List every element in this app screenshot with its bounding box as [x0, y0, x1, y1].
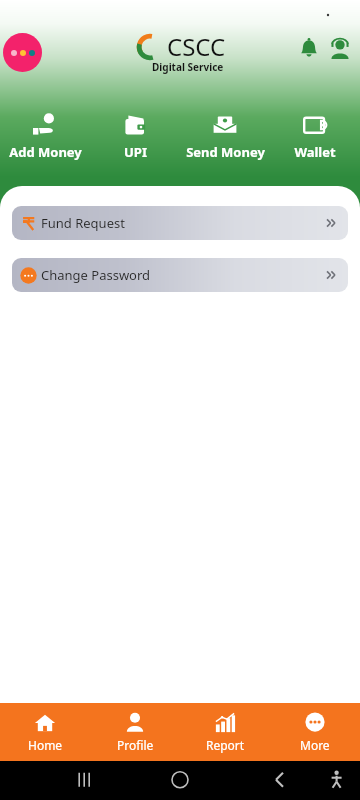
- staticText: Report: [206, 737, 245, 753]
- button[interactable]: UPI: [90, 110, 180, 161]
- staticText: Fund Request: [41, 214, 125, 232]
- staticText: Digital Service: [152, 60, 224, 74]
- button[interactable]: Change Password: [12, 258, 348, 292]
- button[interactable]: Home: [0, 703, 90, 761]
- staticText: Add Money: [9, 143, 82, 161]
- button[interactable]: Notifications: [296, 36, 322, 62]
- staticText: Change Password: [41, 266, 151, 284]
- staticText: Wallet: [294, 143, 336, 161]
- staticText: More: [300, 737, 330, 753]
- staticText: Send Money: [186, 143, 265, 161]
- staticText: Profile: [117, 737, 154, 753]
- button[interactable]: Support: [327, 36, 353, 62]
- button[interactable]: Menu: [3, 33, 42, 72]
- staticText: UPI: [124, 143, 147, 161]
- button[interactable]: Report: [180, 703, 270, 761]
- button[interactable]: Send Money: [180, 110, 270, 161]
- button[interactable]: Wallet: [270, 110, 360, 161]
- button[interactable]: Profile: [90, 703, 180, 761]
- staticText: Home: [28, 737, 63, 753]
- button[interactable]: Fund Request: [12, 206, 348, 240]
- button[interactable]: More: [270, 703, 360, 761]
- button[interactable]: Add Money: [0, 110, 90, 161]
- staticText: CSCC: [167, 30, 226, 63]
